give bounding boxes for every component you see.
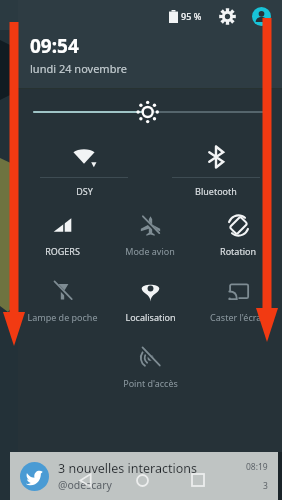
staticText: Localisation	[125, 311, 176, 323]
staticText: 08:19	[246, 461, 268, 473]
button[interactable]: Bluetooth	[150, 135, 282, 197]
staticText: 3 nouvelles interactions	[58, 460, 198, 477]
staticText: 3	[263, 480, 268, 492]
staticText: Lampe de poche	[27, 311, 98, 323]
button[interactable]: User profile	[248, 3, 274, 29]
staticText: lundi 24 novembre	[30, 61, 127, 76]
button[interactable]: Recent apps	[170, 452, 226, 500]
button[interactable]: Rotation automatique	[194, 203, 282, 257]
staticText: DSY	[76, 185, 93, 197]
staticText: 09:54	[30, 33, 79, 59]
button[interactable]: DSY	[18, 135, 150, 197]
button[interactable]: Caster l'écran	[194, 269, 282, 323]
staticText: ROGERS	[45, 245, 80, 257]
staticText: Rotation automatique	[194, 245, 282, 257]
button[interactable]: Back	[57, 452, 114, 500]
button[interactable]: Point d'accès	[106, 335, 194, 389]
button[interactable]: 3 nouvelles interactions	[10, 452, 278, 500]
button[interactable]: Mode avion	[106, 203, 194, 257]
staticText: 95 %	[181, 10, 202, 22]
button[interactable]: Home	[114, 452, 170, 500]
staticText: Caster l'écran	[210, 311, 267, 323]
staticText: @odescary	[58, 478, 112, 492]
button[interactable]: ROGERS	[18, 203, 106, 257]
button[interactable]: Lampe de poche	[18, 269, 106, 323]
button[interactable]: Brightness	[18, 89, 282, 135]
button[interactable]: Settings	[214, 3, 240, 29]
staticText: Bluetooth	[195, 185, 237, 197]
staticText: Mode avion	[125, 245, 175, 257]
staticText: Point d'accès	[123, 377, 178, 389]
button[interactable]: Localisation	[106, 269, 194, 323]
